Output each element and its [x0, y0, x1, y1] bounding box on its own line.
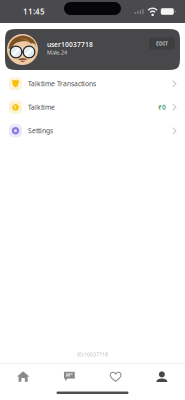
button[interactable]: Talktime: [0, 95, 185, 119]
staticText: ₹0: [158, 103, 166, 112]
staticText: 11:45: [23, 6, 45, 17]
staticText: Settings: [28, 126, 53, 135]
button[interactable]: Messages: [46, 363, 92, 389]
button[interactable]: Home: [0, 363, 46, 389]
staticText: Talktime: [28, 103, 55, 112]
staticText: user10037718: [47, 40, 93, 49]
button[interactable]: Settings: [0, 119, 185, 142]
button[interactable]: EDIT: [149, 37, 175, 49]
button[interactable]: Favourites: [92, 363, 139, 389]
button[interactable]: Talktime Transactions: [0, 72, 185, 95]
button[interactable]: Profile: [139, 363, 185, 389]
staticText: EDIT: [156, 40, 168, 47]
staticText: Male, 24: [47, 49, 67, 56]
staticText: Talktime Transactions: [28, 79, 96, 88]
staticText: ID:10037718: [77, 351, 108, 358]
